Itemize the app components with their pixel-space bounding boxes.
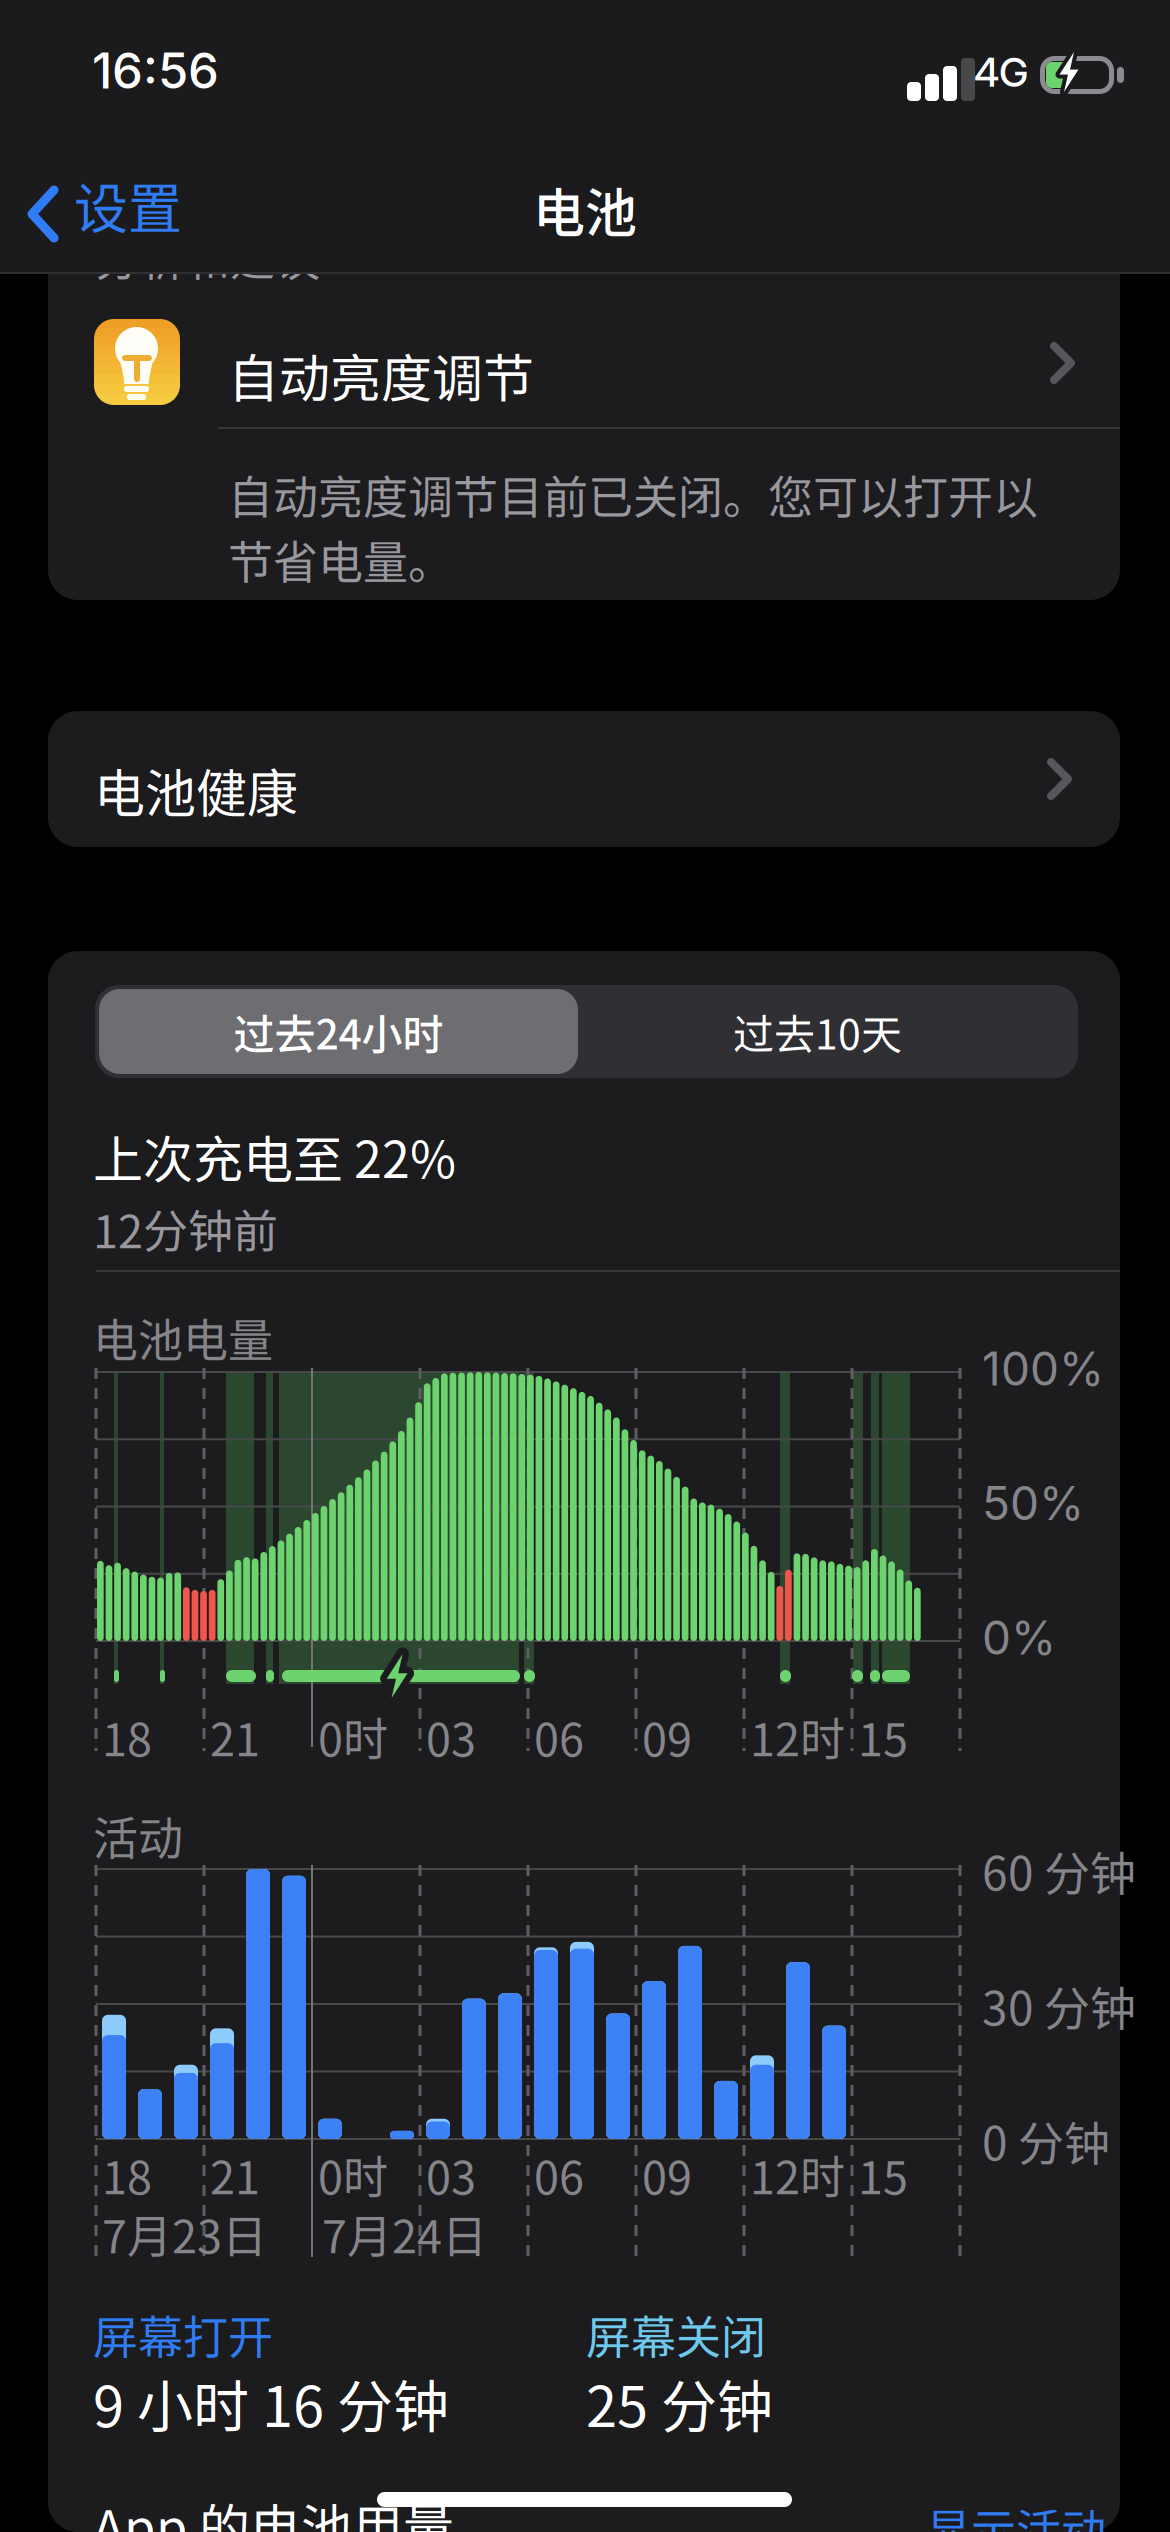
staticText: 7月23日 xyxy=(102,2201,267,2266)
staticText: 自动亮度调节目前已关闭。您可以打开以节省电量。 xyxy=(228,462,1038,592)
staticText: 屏幕打开 xyxy=(93,2302,273,2367)
staticText: 100% xyxy=(982,1341,1104,1397)
staticText: 电池电量 xyxy=(93,1305,273,1370)
staticText: 电池 xyxy=(533,172,637,247)
staticText: 18 xyxy=(102,2142,152,2207)
staticText: 50% xyxy=(982,1475,1084,1531)
staticText: 06 xyxy=(534,2142,584,2207)
staticText: 0% xyxy=(982,1610,1056,1666)
staticText: 上次充电至 22% xyxy=(93,1120,456,1192)
button[interactable]: 过去24小时 xyxy=(99,989,578,1074)
staticText: 12时 xyxy=(750,1704,845,1769)
button[interactable]: 显示活动 xyxy=(910,2492,1110,2532)
staticText: 18 xyxy=(102,1704,152,1769)
staticText: 电池健康 xyxy=(94,753,298,827)
staticText: 21 xyxy=(210,1704,260,1769)
staticText: 12时 xyxy=(750,2142,845,2207)
staticText: 活动 xyxy=(93,1803,183,1868)
staticText: 21 xyxy=(210,2142,260,2207)
staticText: 9 小时 16 分钟 xyxy=(93,2362,449,2443)
staticText: 自动亮度调节 xyxy=(228,338,534,412)
staticText: 06 xyxy=(534,1704,584,1769)
staticText: 分析和建议 xyxy=(95,224,320,289)
staticText: App 的电池用量 xyxy=(93,2488,454,2532)
staticText: 25 分钟 xyxy=(586,2362,773,2443)
button[interactable]: 电池健康 xyxy=(48,711,1120,847)
staticText: 15 xyxy=(858,1704,908,1769)
staticText: 设置 xyxy=(74,166,182,244)
staticText: 0 分钟 xyxy=(982,2107,1110,2174)
staticText: 7月24日 xyxy=(322,2201,487,2266)
staticText: 03 xyxy=(426,2142,476,2207)
staticText: 0时 xyxy=(318,2142,388,2207)
staticText: 16:56 xyxy=(92,41,219,100)
staticText: 09 xyxy=(642,1704,692,1769)
staticText: 09 xyxy=(642,2142,692,2207)
staticText: 60 分钟 xyxy=(982,1837,1136,1904)
button[interactable]: 自动亮度调节 xyxy=(1020,313,1120,413)
staticText: 12分钟前 xyxy=(93,1196,278,1261)
staticText: 03 xyxy=(426,1704,476,1769)
staticText: 屏幕关闭 xyxy=(586,2302,766,2367)
staticText: 0时 xyxy=(318,1704,388,1769)
button[interactable]: 过去10天 xyxy=(578,989,1057,1074)
staticText: 显示活动 xyxy=(926,2495,1106,2532)
staticText: 过去24小时 xyxy=(233,1002,443,1061)
staticText: 4G xyxy=(974,48,1028,96)
button[interactable]: 设置 xyxy=(0,166,250,262)
staticText: 30 分钟 xyxy=(982,1972,1136,2039)
staticText: 15 xyxy=(858,2142,908,2207)
staticText: 过去10天 xyxy=(733,1002,902,1061)
